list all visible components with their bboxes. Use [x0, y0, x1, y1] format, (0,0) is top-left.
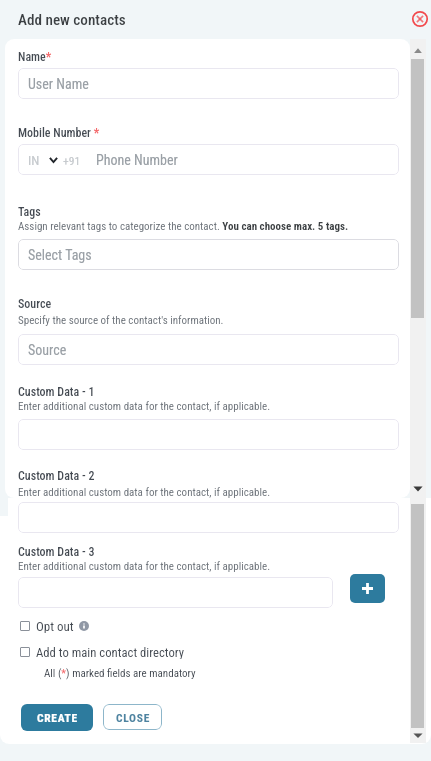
button[interactable]: CREATE	[21, 704, 93, 731]
staticText: Enter additional custom data for the con…	[18, 400, 271, 413]
staticText: Name*	[18, 50, 52, 64]
staticText: All (*) marked fields are mandatory	[44, 667, 196, 680]
staticText: Enter additional custom data for the con…	[18, 560, 271, 573]
staticText: Source	[18, 297, 52, 311]
staticText: Specify the source of the contact's info…	[18, 314, 224, 327]
button[interactable]	[18, 577, 333, 608]
staticText: CREATE	[37, 711, 78, 724]
staticText: Add to main contact directory	[36, 645, 185, 659]
staticText: +91	[63, 154, 81, 167]
button[interactable]: Source	[18, 334, 399, 365]
button[interactable]: IN	[18, 144, 399, 175]
staticText: CLOSE	[116, 711, 150, 724]
button[interactable]	[18, 419, 399, 450]
button[interactable]: CLOSE	[103, 704, 162, 730]
staticText: Phone Number	[96, 152, 178, 168]
staticText: Mobile Number *	[18, 126, 100, 140]
button[interactable]: Add custom field	[350, 574, 385, 603]
button[interactable]: Opt out	[20, 619, 89, 633]
staticText: Tags	[18, 205, 41, 219]
staticText: Custom Data - 3	[18, 545, 95, 559]
staticText: Add new contacts	[18, 11, 126, 29]
staticText: Custom Data - 1	[18, 385, 95, 399]
staticText: User Name	[28, 76, 89, 92]
staticText: Enter additional custom data for the con…	[18, 486, 271, 499]
button[interactable]: User Name	[18, 68, 399, 99]
staticText: Source	[28, 342, 67, 358]
button[interactable]: Close	[405, 4, 431, 34]
staticText: Select Tags	[28, 247, 92, 263]
button[interactable]: Add to main contact directory	[20, 645, 185, 659]
staticText: Custom Data - 2	[18, 469, 95, 483]
staticText: Opt out	[36, 619, 74, 633]
button[interactable]	[18, 502, 399, 533]
button[interactable]: Select Tags	[18, 239, 399, 270]
staticText: Assign relevant tags to categorize the c…	[18, 220, 349, 233]
staticText: IN	[28, 153, 40, 168]
